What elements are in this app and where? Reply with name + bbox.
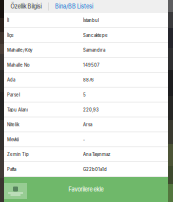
staticText: G22b01a1d — [83, 167, 107, 172]
staticText: Özellik Bilgisi — [10, 3, 41, 10]
staticText: Zemin Tip — [7, 152, 29, 157]
staticText: İl — [7, 18, 9, 23]
staticText: Pafta — [7, 167, 16, 172]
staticText: Mahalle No — [7, 63, 30, 68]
staticText: Samandıra — [83, 48, 105, 53]
staticText: Favorilere ekle — [68, 186, 103, 193]
staticText: 149507 — [83, 63, 99, 68]
staticText: Bina/BB Listesi — [55, 3, 93, 10]
staticText: Sancaktepe — [83, 33, 108, 38]
staticText: Parsel — [7, 92, 20, 98]
staticText: Ana Taşınmaz — [83, 152, 110, 157]
button[interactable]: Favorilere ekle — [4, 177, 168, 202]
staticText: Nitelik — [7, 122, 19, 127]
button[interactable]: Bina/BB Listesi — [49, 0, 99, 13]
staticText: Tapu Alanı — [7, 107, 28, 112]
staticText: İstanbul — [83, 18, 99, 23]
staticText: 5 — [83, 92, 86, 98]
staticText: - — [83, 137, 85, 142]
staticText: Ada — [7, 77, 15, 83]
staticText: Arsa — [83, 122, 92, 127]
staticText: Mahalle/Köy — [7, 48, 32, 53]
staticText: İlçe — [7, 33, 14, 38]
staticText: Mevkii — [7, 137, 19, 142]
staticText: 8876 — [83, 77, 94, 83]
button[interactable]: Özellik Bilgisi — [4, 0, 48, 13]
staticText: 220,93 — [83, 107, 99, 112]
